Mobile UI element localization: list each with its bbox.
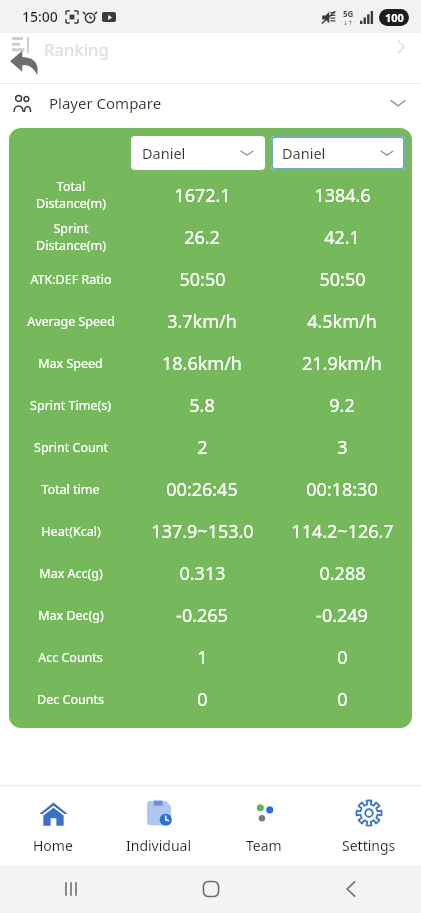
staticText: 2 <box>197 435 208 460</box>
staticText: Heat(Kcal) <box>41 523 101 540</box>
staticText: 0.313 <box>179 561 226 586</box>
staticText: Max Speed <box>38 355 103 372</box>
staticText: 5.8 <box>189 393 215 418</box>
staticText: Sprint Count <box>34 439 108 456</box>
staticText: ATK:DEF Ratio <box>30 271 112 288</box>
staticText: Player Compare <box>49 93 162 113</box>
staticText: Total Distance(m) <box>36 178 106 212</box>
staticText: 0 <box>337 645 348 670</box>
button[interactable]: Player Compare <box>0 84 421 122</box>
staticText: Home <box>33 836 73 855</box>
staticText: 100 <box>385 10 404 25</box>
staticText: Sprint Time(s) <box>30 397 111 414</box>
staticText: Dec Counts <box>37 691 104 708</box>
button[interactable]: Daniel <box>131 136 265 170</box>
staticText: 1384.6 <box>314 183 371 208</box>
staticText: 50:50 <box>179 267 226 292</box>
staticText: 00:18:30 <box>306 477 378 502</box>
staticText: 00:26:45 <box>166 477 238 502</box>
staticText: 0 <box>197 687 208 712</box>
staticText: Acc Counts <box>38 649 103 666</box>
staticText: 18.6km/h <box>162 351 242 376</box>
staticText: 0 <box>337 687 348 712</box>
button[interactable]: Daniel <box>271 136 405 170</box>
staticText: 114.2~126.7 <box>291 519 394 544</box>
staticText: 50:50 <box>319 267 366 292</box>
staticText: -0.265 <box>176 603 228 628</box>
button[interactable]: Team <box>211 786 316 865</box>
staticText: 3.7km/h <box>167 309 237 334</box>
staticText: Settings <box>342 836 396 855</box>
staticText: 21.9km/h <box>302 351 382 376</box>
staticText: 137.9~153.0 <box>151 519 254 544</box>
staticText: Daniel <box>142 143 186 163</box>
staticText: Team <box>246 836 282 855</box>
staticText: 3 <box>337 435 348 460</box>
staticText: -0.249 <box>316 603 368 628</box>
other: Home <box>202 880 220 898</box>
other: Recents <box>62 880 80 898</box>
staticText: Ranking <box>44 38 110 61</box>
staticText: 9.2 <box>329 393 355 418</box>
button[interactable]: Back <box>8 45 42 79</box>
staticText: 42.1 <box>324 225 360 250</box>
staticText: 1 <box>197 645 208 670</box>
button[interactable]: Home <box>0 786 106 865</box>
staticText: Total time <box>41 481 100 498</box>
staticText: Sprint Distance(m) <box>36 220 106 254</box>
staticText: Daniel <box>282 143 326 163</box>
staticText: 5G <box>343 8 354 19</box>
staticText: ↓↑ <box>343 19 354 26</box>
button[interactable]: Settings <box>316 786 421 865</box>
staticText: Average Speed <box>27 313 115 330</box>
button[interactable]: Ranking <box>0 33 421 83</box>
staticText: Max Acc(g) <box>39 565 103 582</box>
staticText: Max Dec(g) <box>38 607 104 624</box>
staticText: 1672.1 <box>174 183 231 208</box>
button[interactable]: Individual <box>106 786 211 865</box>
other: Back <box>342 880 360 898</box>
staticText: 15:00 <box>22 7 58 26</box>
staticText: 0.288 <box>319 561 366 586</box>
staticText: 26.2 <box>184 225 220 250</box>
staticText: Individual <box>126 836 192 855</box>
staticText: 4.5km/h <box>307 309 377 334</box>
